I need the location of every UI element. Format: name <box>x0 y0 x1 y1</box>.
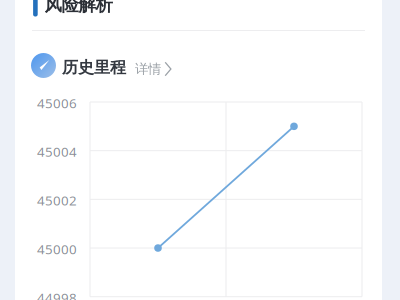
staticText: 45002 <box>37 191 77 209</box>
staticText: 45000 <box>37 240 77 258</box>
staticText: 风险解析 <box>44 0 112 16</box>
staticText: 45006 <box>37 94 77 112</box>
staticText: 历史里程 <box>62 58 126 77</box>
staticText: 45004 <box>37 143 77 160</box>
button[interactable]: 历史里程 <box>31 49 211 85</box>
staticText: 详情 <box>135 61 161 77</box>
staticText: 44998 <box>37 289 77 300</box>
